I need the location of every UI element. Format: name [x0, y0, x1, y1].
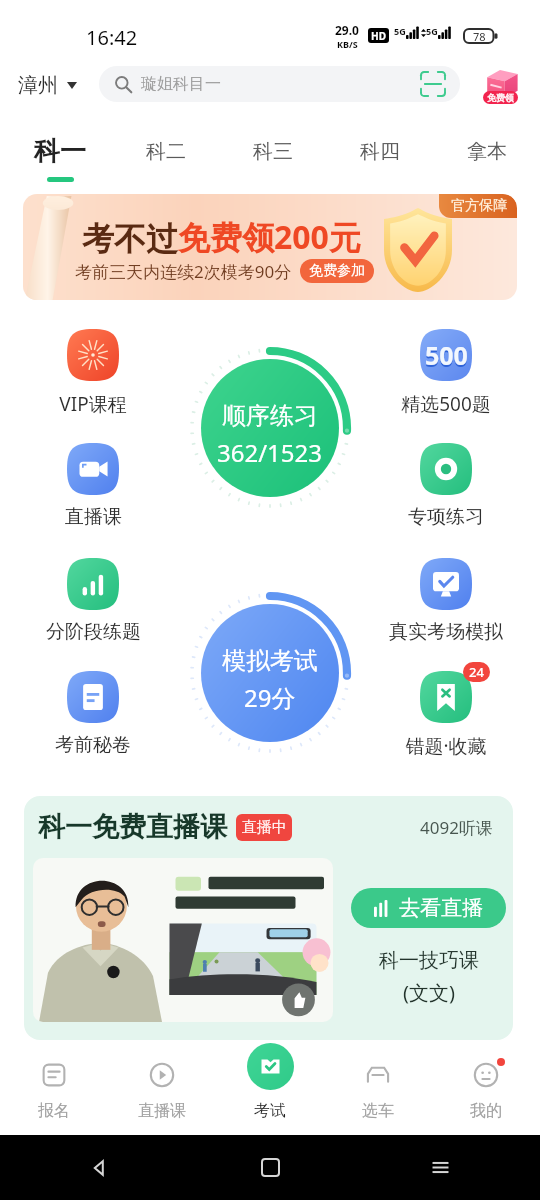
staticText: 16:42	[86, 24, 138, 51]
staticText: 科一	[34, 135, 86, 168]
button[interactable]: 24	[386, 671, 506, 759]
staticText: 4092听课	[420, 816, 493, 839]
staticText: 29.0	[335, 22, 359, 38]
staticText: 考前三天内连续2次模考90分	[75, 260, 292, 283]
staticText: 24	[469, 663, 484, 681]
staticText: 精选500题	[401, 391, 491, 417]
button[interactable]: 分阶段练题	[33, 558, 153, 644]
button[interactable]: 顺序练习	[182, 340, 358, 516]
staticText: 真实考场模拟	[389, 620, 503, 644]
staticText: 362/1523	[217, 436, 323, 469]
button[interactable]: Free booklet	[480, 66, 520, 106]
staticText: 分阶段练题	[46, 620, 141, 644]
staticText: 错题·收藏	[405, 733, 487, 759]
staticText: (文文)	[403, 979, 455, 1006]
button[interactable]: 璇姐科目一	[99, 66, 460, 102]
staticText: 官方保障	[451, 197, 507, 215]
staticText: 顺序练习	[222, 401, 318, 431]
button[interactable]: 选车	[324, 1045, 432, 1131]
staticText: 免费领200元	[178, 215, 361, 259]
button[interactable]: 科三	[219, 124, 326, 184]
staticText: 5G	[426, 25, 438, 37]
button[interactable]: 精选500题	[386, 329, 506, 417]
button[interactable]: 报名	[0, 1045, 108, 1131]
button[interactable]: 直播课	[108, 1045, 216, 1131]
staticText: 去看直播	[399, 895, 483, 921]
staticText: 模拟考试	[222, 646, 318, 676]
button[interactable]: 拿本	[433, 124, 540, 184]
button[interactable]: 考试	[216, 1045, 324, 1123]
staticText: 5G	[394, 25, 406, 37]
button[interactable]: 我的	[432, 1045, 540, 1131]
button[interactable]: 考前秘卷	[33, 671, 153, 757]
staticText: 我的	[470, 1101, 502, 1121]
staticText: 免费参加	[309, 262, 365, 280]
button[interactable]: VIP课程	[33, 329, 153, 417]
button[interactable]: 科一免费直播课	[24, 796, 513, 1040]
staticText: 科二	[146, 139, 186, 164]
staticText: 500	[425, 338, 468, 372]
staticText: 直播课	[65, 505, 122, 529]
button[interactable]: 考不过	[23, 194, 517, 300]
staticText: 考前秘卷	[55, 733, 131, 757]
staticText: 免费领	[487, 92, 514, 103]
staticText: KB/S	[337, 38, 358, 50]
staticText: 科一免费直播课	[38, 810, 227, 844]
staticText: 璇姐科目一	[141, 74, 221, 94]
button[interactable]: 去看直播	[351, 888, 506, 928]
staticText: 选车	[362, 1101, 394, 1121]
staticText: 科四	[360, 139, 400, 164]
button[interactable]: 模拟考试	[182, 585, 358, 761]
staticText: 科三	[253, 139, 293, 164]
staticText: 考试	[254, 1101, 286, 1121]
staticText: VIP课程	[59, 391, 127, 417]
staticText: 78	[473, 29, 486, 43]
staticText: 拿本	[467, 139, 507, 164]
staticText: 29分	[244, 681, 296, 714]
button[interactable]: 真实考场模拟	[386, 558, 506, 644]
button[interactable]: 科二	[113, 124, 219, 184]
staticText: 专项练习	[408, 505, 484, 529]
button[interactable]: 直播课	[33, 443, 153, 529]
staticText: 考不过	[82, 219, 178, 259]
staticText: HD	[371, 29, 386, 43]
staticText: 直播课	[138, 1101, 186, 1121]
staticText: 报名	[38, 1101, 70, 1121]
button[interactable]: 漳州	[18, 73, 77, 97]
button[interactable]: 科一	[7, 124, 113, 184]
staticText: 科一技巧课	[379, 948, 479, 973]
staticText: 直播中	[242, 818, 287, 837]
button[interactable]: Scan QR code	[421, 72, 445, 96]
staticText: 漳州	[18, 73, 58, 97]
button[interactable]: 科四	[326, 124, 433, 184]
button[interactable]: 专项练习	[386, 443, 506, 529]
staticText: 500	[425, 340, 468, 374]
